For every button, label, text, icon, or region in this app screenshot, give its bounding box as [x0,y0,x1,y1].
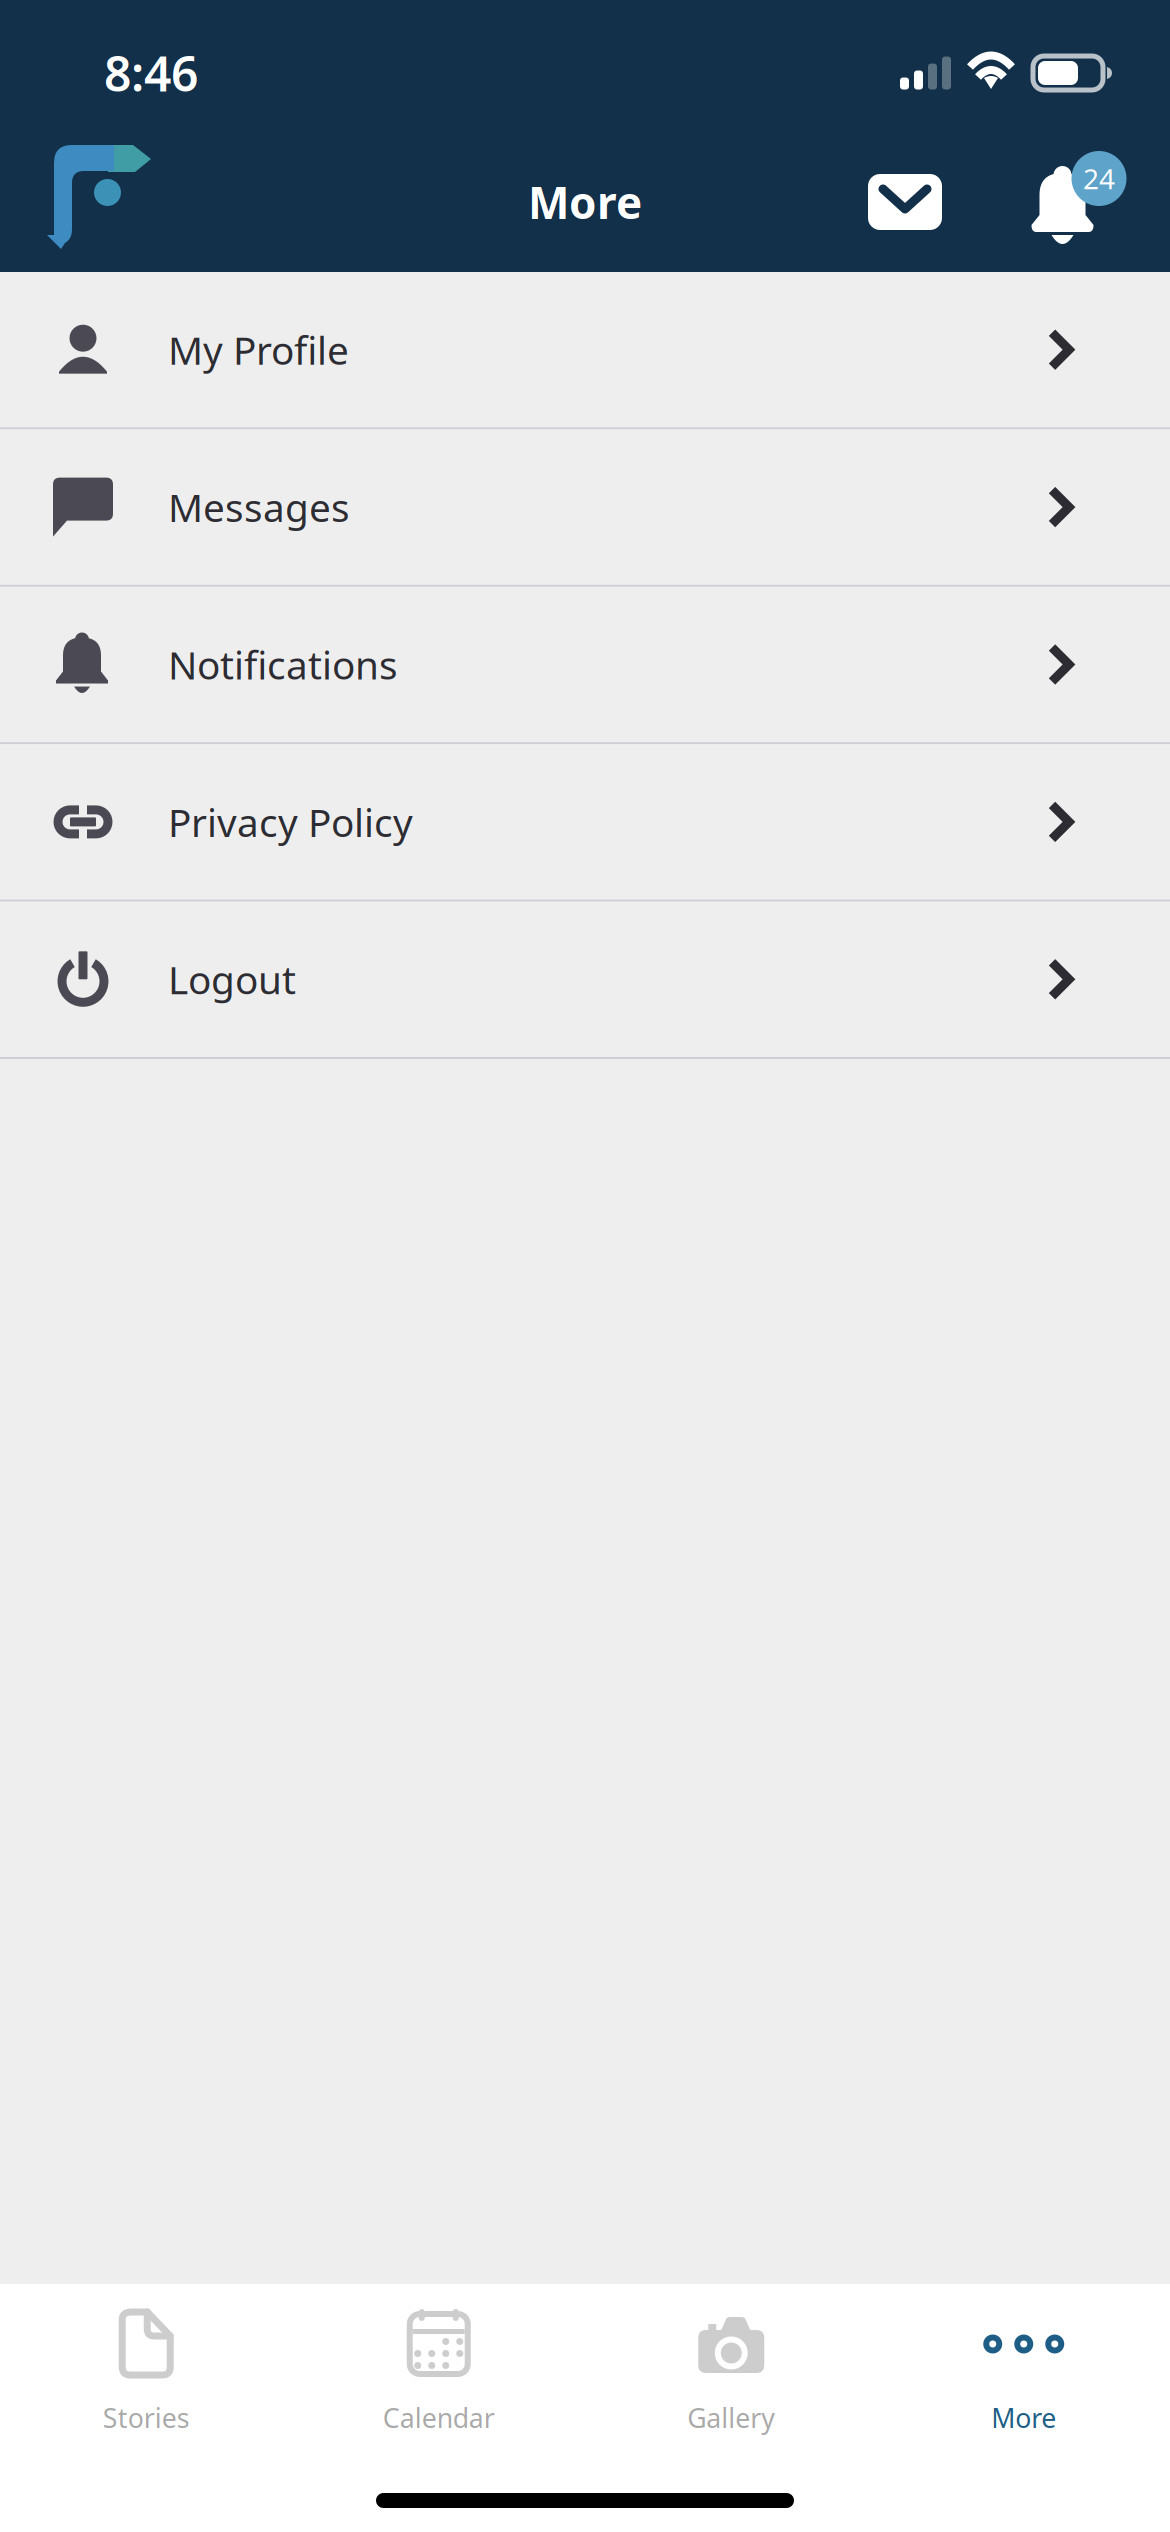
staticText: Messages [168,481,350,533]
button[interactable]: Gallery [585,2284,877,2435]
staticText: 24 [1083,160,1115,197]
staticText: 8:46 [104,41,198,105]
button[interactable]: Home [26,132,176,272]
button[interactable]: Notifications [1016,142,1142,262]
button[interactable]: Stories [0,2284,292,2435]
staticText: Stories [103,2400,190,2435]
button[interactable]: Calendar [292,2284,585,2435]
staticText: More [528,173,642,231]
button[interactable]: Privacy Policy [0,744,1170,900]
button[interactable]: Notifications [0,587,1170,742]
staticText: Privacy Policy [168,796,413,847]
button[interactable]: Messages [0,429,1170,585]
button[interactable]: My Profile [0,272,1170,427]
button[interactable]: More [877,2284,1170,2435]
staticText: Logout [168,954,296,1005]
button[interactable]: Logout [0,902,1170,1057]
staticText: Gallery [687,2400,775,2435]
staticText: Calendar [383,2400,495,2435]
staticText: Notifications [168,639,398,690]
button[interactable]: Messages [842,142,968,262]
staticText: My Profile [168,324,349,375]
staticText: More [991,2400,1056,2435]
